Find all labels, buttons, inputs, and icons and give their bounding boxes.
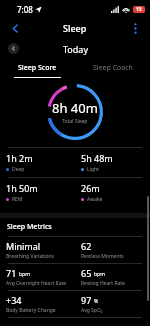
staticText: Body Battery Change (6, 307, 56, 314)
button[interactable]: Previous day (8, 43, 19, 54)
button[interactable]: Sleep Score (0, 59, 75, 77)
staticText: Breathing Variations (6, 253, 54, 260)
button[interactable]: +34 (0, 291, 150, 317)
staticText: Restless Moments (81, 253, 124, 260)
button[interactable]: 71 (0, 264, 150, 290)
staticText: Deep (12, 166, 25, 173)
staticText: Awake (87, 196, 103, 203)
staticText: Sleep (63, 22, 87, 34)
staticText: 15 (136, 6, 142, 13)
button[interactable]: Minimal (0, 237, 150, 263)
staticText: 8h 40m (52, 99, 98, 117)
staticText: Total Sleep (62, 118, 88, 125)
staticText: 7:08 (17, 4, 33, 15)
staticText: Today (63, 43, 88, 55)
staticText: Avg Overnight Heart Rate (6, 280, 67, 287)
staticText: 97 (81, 294, 92, 306)
staticText: Light (87, 166, 99, 173)
staticText: % (94, 298, 99, 305)
staticText: bpm (19, 271, 30, 278)
staticText: bpm (94, 271, 105, 278)
staticText: Avg SpO₂ (81, 307, 103, 314)
staticText: 1h 50m (6, 182, 38, 194)
staticText: 62 (81, 240, 92, 252)
staticText: 1h 2m (6, 152, 33, 164)
staticText: Minimal (6, 240, 41, 252)
staticText: Resting Heart Rate (81, 280, 125, 287)
button[interactable]: 1h 2m (0, 148, 150, 177)
button[interactable]: 1h 50m (0, 178, 150, 207)
staticText: REM (12, 196, 23, 203)
button[interactable]: Sleep Coach (75, 59, 150, 77)
staticText: Sleep Coach (93, 63, 133, 73)
staticText: 26m (81, 182, 100, 194)
button[interactable]: Back (6, 19, 24, 37)
staticText: 5h 48m (81, 152, 113, 164)
staticText: Sleep Metrics (7, 222, 52, 232)
staticText: Sleep Score (18, 63, 57, 73)
staticText: 71 (6, 267, 17, 279)
staticText: +34 (6, 294, 22, 306)
button[interactable]: More options (126, 19, 144, 37)
staticText: 65 (81, 267, 92, 279)
